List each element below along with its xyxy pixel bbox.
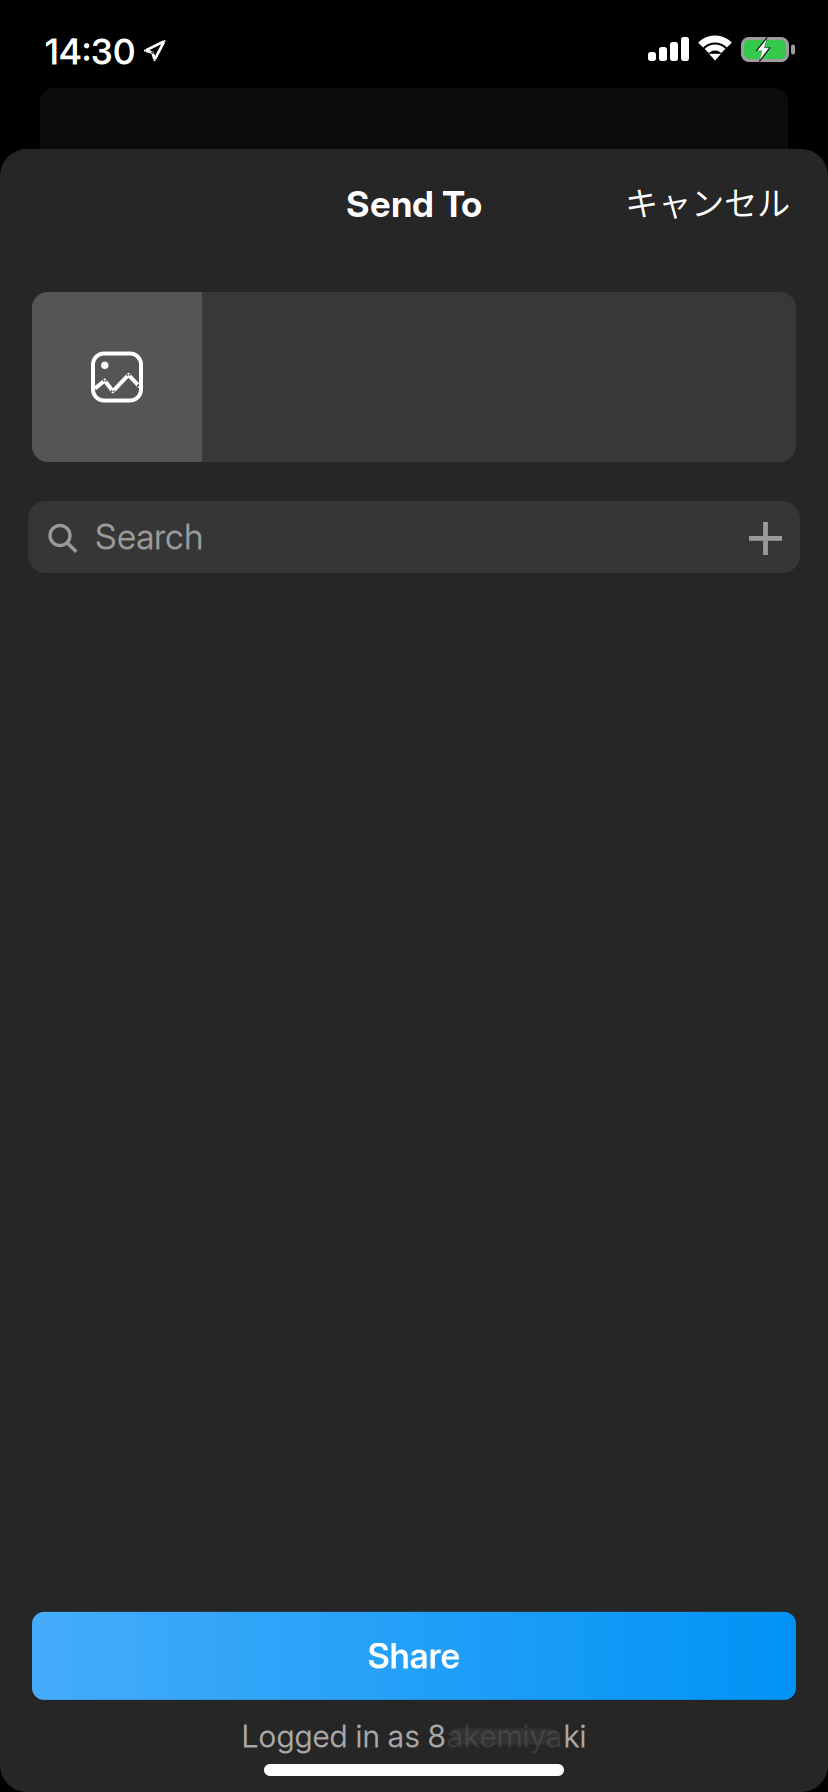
staticText: キャンセル <box>625 177 790 225</box>
staticText: Search <box>95 516 203 558</box>
button[interactable]: Add recipient <box>739 509 792 565</box>
staticText: akemiya <box>446 1718 562 1755</box>
staticText: 14:30 <box>45 31 135 73</box>
staticText: Send To <box>346 182 482 226</box>
button[interactable]: キャンセル <box>609 167 806 241</box>
staticText: ki <box>563 1718 586 1755</box>
staticText: Logged in as 8 <box>241 1718 445 1755</box>
button[interactable]: Share <box>32 1612 796 1700</box>
staticText: Share <box>367 1635 460 1677</box>
